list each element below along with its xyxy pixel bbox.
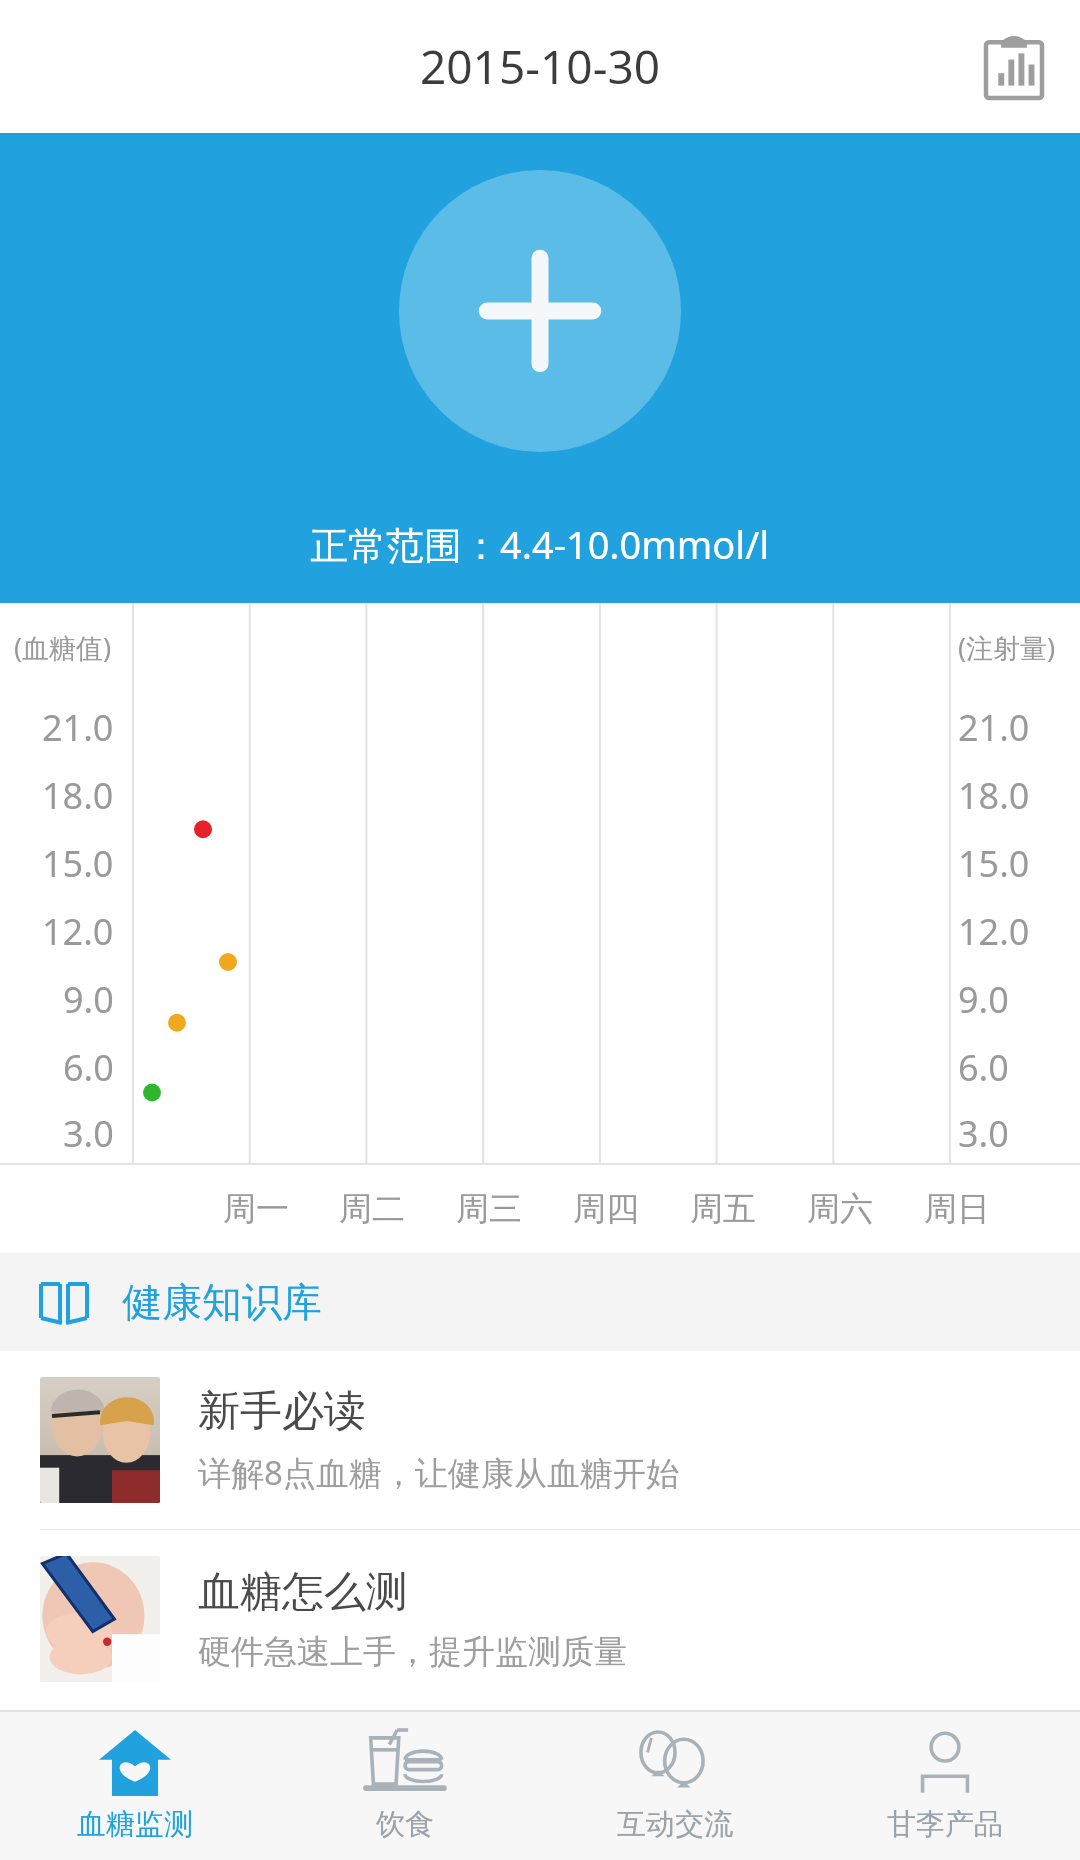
staticText: 18.0 xyxy=(42,771,114,820)
button[interactable]: 血糖怎么测 xyxy=(0,1530,1080,1708)
button[interactable]: 饮食 xyxy=(270,1712,540,1860)
staticText: 甘李产品 xyxy=(887,1806,1003,1843)
button[interactable]: 血糖监测 xyxy=(0,1712,270,1860)
staticText: 周六 xyxy=(807,1188,873,1230)
staticText: 9.0 xyxy=(63,975,114,1024)
staticText: 21.0 xyxy=(958,703,1030,752)
staticText: 硬件急速上手，提升监测质量 xyxy=(198,1631,627,1673)
button[interactable]: Add measurement xyxy=(399,170,681,452)
staticText: 饮食 xyxy=(376,1806,434,1843)
button[interactable]: 健康知识库 xyxy=(0,1253,1080,1351)
staticText: 周五 xyxy=(690,1188,756,1230)
staticText: 15.0 xyxy=(42,839,114,888)
staticText: 21.0 xyxy=(42,703,114,752)
button[interactable]: Records xyxy=(966,19,1062,115)
staticText: 3.0 xyxy=(958,1109,1009,1158)
staticText: 12.0 xyxy=(958,907,1030,956)
staticText: 正常范围：4.4-10.0mmol/l xyxy=(310,518,770,570)
staticText: 9.0 xyxy=(958,975,1009,1024)
staticText: 新手必读 xyxy=(198,1385,366,1438)
staticText: (血糖值) xyxy=(14,629,114,666)
button[interactable]: 互动交流 xyxy=(540,1712,810,1860)
staticText: (注射量) xyxy=(958,629,1058,666)
staticText: 周一 xyxy=(223,1188,289,1230)
staticText: 18.0 xyxy=(958,771,1030,820)
staticText: 互动交流 xyxy=(617,1806,733,1843)
staticText: 6.0 xyxy=(958,1043,1009,1092)
staticText: 健康知识库 xyxy=(122,1277,322,1327)
staticText: 6.0 xyxy=(63,1043,114,1092)
staticText: 2015-10-30 xyxy=(420,35,661,98)
staticText: 血糖怎么测 xyxy=(198,1566,408,1619)
staticText: 详解8点血糖，让健康从血糖开始 xyxy=(198,1450,679,1495)
staticText: 血糖监测 xyxy=(77,1806,193,1843)
staticText: 15.0 xyxy=(958,839,1030,888)
staticText: 周二 xyxy=(339,1188,405,1230)
staticText: 3.0 xyxy=(63,1109,114,1158)
staticText: 周三 xyxy=(456,1188,522,1230)
button[interactable]: 新手必读 xyxy=(0,1351,1080,1529)
staticText: 周四 xyxy=(573,1188,639,1230)
staticText: 12.0 xyxy=(42,907,114,956)
staticText: 周日 xyxy=(924,1188,990,1230)
button[interactable]: 甘李产品 xyxy=(810,1712,1080,1860)
